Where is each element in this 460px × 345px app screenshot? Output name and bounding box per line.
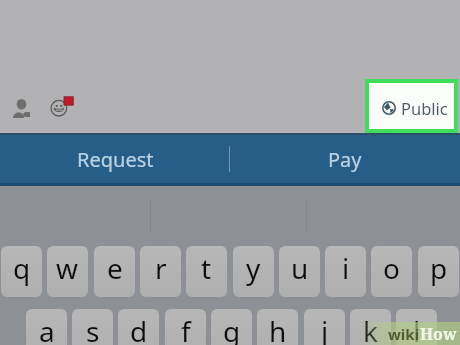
staticText: s xyxy=(86,312,100,345)
button[interactable]: j xyxy=(304,309,345,345)
staticText: q xyxy=(13,249,31,287)
staticText: Request xyxy=(77,146,154,173)
staticText: wiki xyxy=(388,324,420,344)
staticText: f xyxy=(181,312,191,345)
staticText: d xyxy=(130,312,148,345)
staticText: p xyxy=(430,249,448,287)
button[interactable]: Add person xyxy=(10,94,34,118)
staticText: o xyxy=(383,249,400,287)
button[interactable]: Pay xyxy=(230,133,460,186)
button[interactable]: l xyxy=(396,309,437,345)
staticText: h xyxy=(269,312,287,345)
button[interactable]: f xyxy=(165,309,206,345)
button[interactable]: e xyxy=(94,246,135,297)
button[interactable]: u xyxy=(279,246,320,297)
button[interactable]: y xyxy=(233,246,274,297)
button[interactable]: g xyxy=(211,309,252,345)
staticText: r xyxy=(155,249,167,287)
button[interactable]: Emoji xyxy=(48,94,76,122)
staticText: Pay xyxy=(328,146,362,173)
button[interactable]: h xyxy=(257,309,298,345)
staticText: u xyxy=(291,249,309,287)
staticText: i xyxy=(342,249,350,287)
staticText: Public xyxy=(401,97,448,119)
button[interactable]: a xyxy=(26,309,67,345)
staticText: w xyxy=(56,249,79,287)
staticText: t xyxy=(201,249,212,287)
button[interactable]: r xyxy=(140,246,181,297)
staticText: y xyxy=(246,249,261,287)
button[interactable]: i xyxy=(325,246,366,297)
button[interactable]: q xyxy=(1,246,42,297)
button[interactable]: d xyxy=(118,309,159,345)
staticText: j xyxy=(321,312,329,345)
staticText: e xyxy=(107,249,123,287)
button[interactable]: t xyxy=(186,246,227,297)
button[interactable]: Public xyxy=(369,83,454,129)
staticText: How xyxy=(420,323,457,345)
staticText: l xyxy=(413,312,421,345)
button[interactable]: w xyxy=(47,246,88,297)
button[interactable]: Request xyxy=(0,133,230,186)
staticText: k xyxy=(363,312,378,345)
button[interactable]: s xyxy=(72,309,113,345)
staticText: a xyxy=(39,312,55,345)
button[interactable]: k xyxy=(350,309,391,345)
button[interactable]: p xyxy=(418,246,459,297)
staticText: g xyxy=(223,312,241,345)
button[interactable]: o xyxy=(371,246,412,297)
